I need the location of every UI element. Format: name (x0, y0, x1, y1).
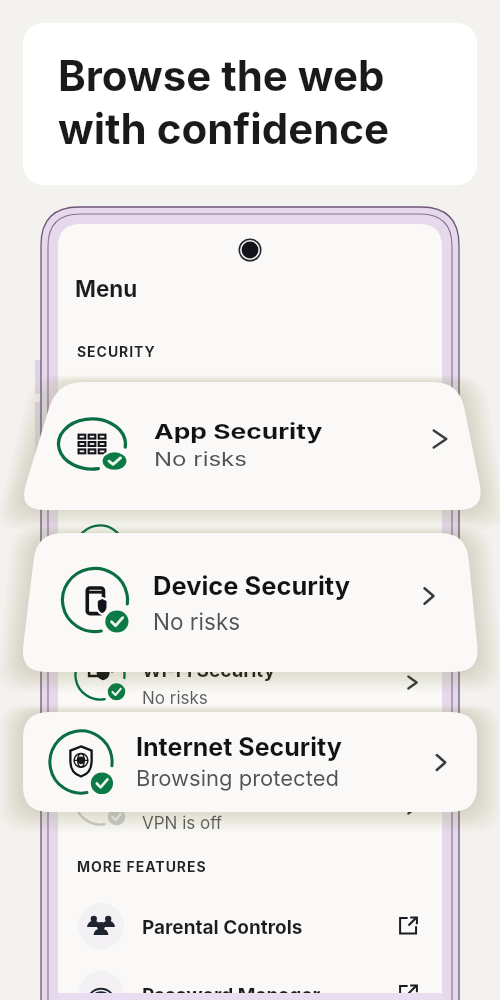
button[interactable]: Parental Controls (58, 892, 442, 960)
staticText: VPN is off (142, 813, 223, 834)
staticText: App Security (154, 418, 323, 443)
staticText: Password Manager (142, 984, 321, 1000)
button[interactable] (23, 712, 477, 812)
staticText: Device Security (142, 597, 289, 620)
button[interactable]: App Security (58, 519, 442, 581)
staticText: Menu (75, 275, 138, 302)
staticText: SECURITY (77, 343, 156, 360)
staticText: Browsing protected (142, 751, 299, 772)
staticText: No risks (142, 626, 208, 647)
button[interactable]: Password Manager (58, 960, 442, 1000)
staticText: Internet Security (142, 722, 299, 745)
staticText: Internet Security (136, 732, 342, 762)
staticText: Device Security (153, 570, 351, 601)
button[interactable]: VPN (58, 769, 442, 831)
staticText: Browse the web with confidence (58, 50, 390, 154)
button[interactable]: Wi-Fi Security (58, 644, 442, 706)
staticText: MORE FEATURES (77, 858, 207, 875)
staticText: Parental Controls (142, 916, 303, 939)
staticText: Wi-Fi Security (142, 659, 276, 682)
staticText: No risks (142, 563, 208, 584)
staticText: Browsing protected (136, 765, 339, 792)
button[interactable] (38, 382, 473, 510)
staticText: VPN (142, 784, 183, 807)
staticText: No risks (142, 688, 208, 709)
staticText: No risks (153, 608, 241, 635)
button[interactable]: Device Security (58, 582, 442, 644)
staticText: No risks (154, 448, 247, 471)
button[interactable] (29, 533, 474, 672)
button[interactable]: Internet Security (58, 707, 442, 769)
